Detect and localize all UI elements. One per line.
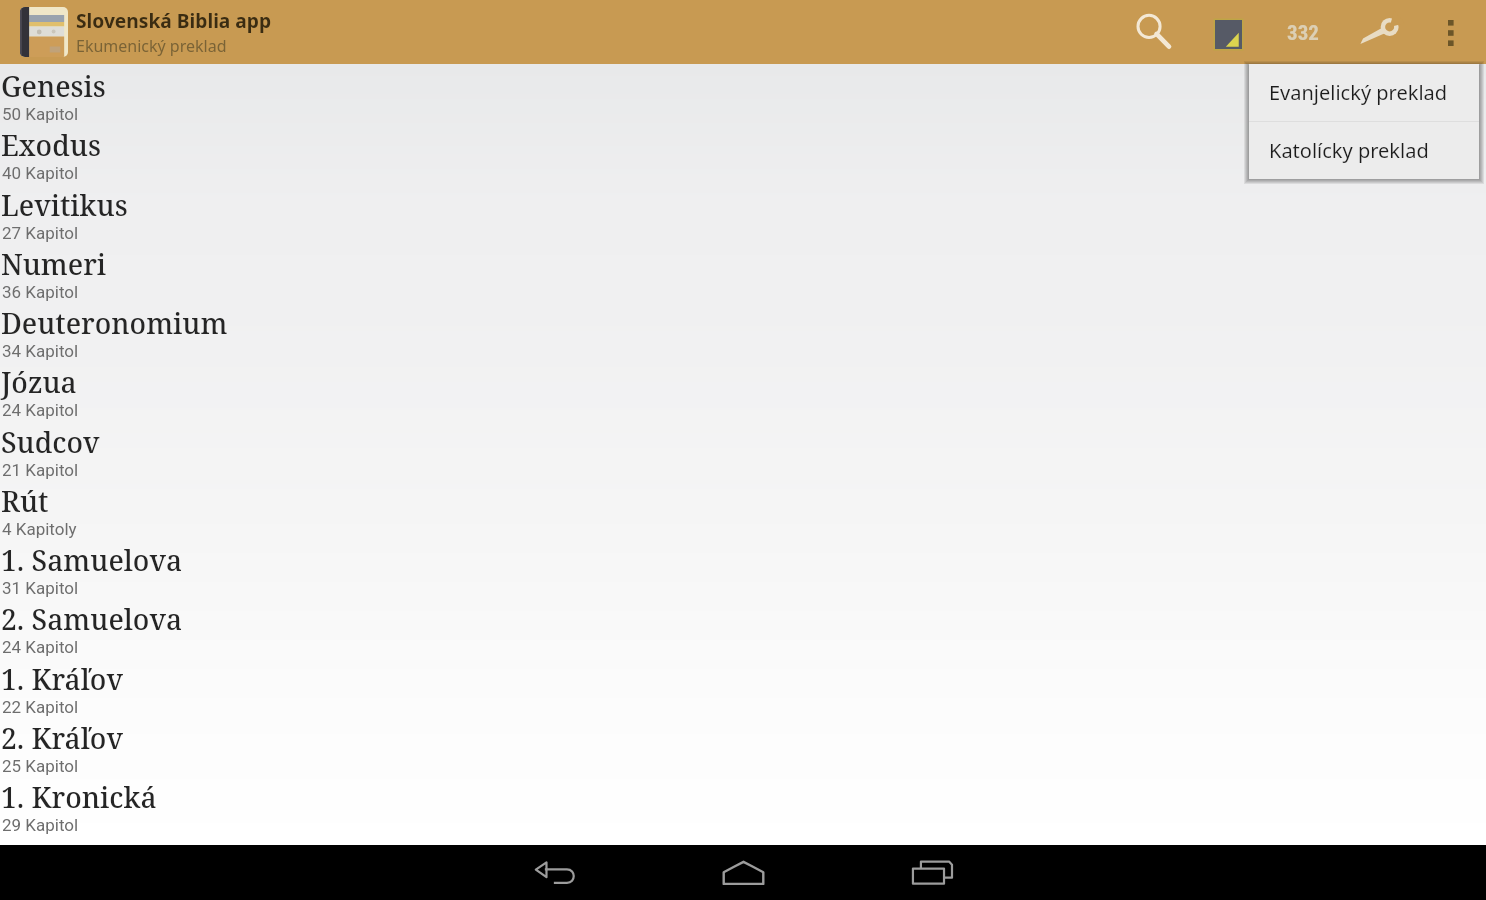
button[interactable]: Settings (1341, 0, 1416, 64)
button[interactable]: Levitikus (0, 183, 1486, 242)
button[interactable]: 1. Samuelova (0, 538, 1486, 597)
staticText: 332 (1287, 21, 1319, 46)
button[interactable]: Recents (837, 845, 1025, 900)
staticText: Sudcov (1, 423, 100, 461)
button[interactable]: Katolícky preklad (1249, 122, 1479, 179)
staticText: 24 Kapitol (2, 400, 79, 420)
staticText: Józua (1, 363, 77, 401)
button[interactable]: Numeri (0, 242, 1486, 301)
staticText: Evanjelický preklad (1269, 79, 1448, 106)
button[interactable]: Slovenská Biblia app (0, 0, 284, 64)
button[interactable]: 2. Kráľov (0, 716, 1486, 775)
staticText: 4 Kapitoly (2, 519, 77, 539)
staticText: 2. Samuelova (1, 600, 183, 638)
staticText: 36 Kapitol (2, 282, 79, 302)
button[interactable]: Genesis (0, 64, 1486, 123)
button[interactable]: Display mode (1191, 0, 1266, 64)
staticText: 1. Kráľov (1, 660, 123, 698)
staticText: Genesis (1, 67, 106, 105)
button[interactable]: Font size (1266, 0, 1341, 64)
staticText: 22 Kapitol (2, 697, 79, 717)
button[interactable]: Józua (0, 360, 1486, 419)
staticText: Numeri (1, 245, 107, 283)
button[interactable]: Back (461, 845, 649, 900)
button[interactable]: Home (649, 845, 837, 900)
button[interactable]: 1. Kráľov (0, 657, 1486, 716)
staticText: 1. Kronická (1, 778, 157, 816)
staticText: 24 Kapitol (2, 637, 79, 657)
staticText: Exodus (1, 126, 101, 164)
button[interactable]: Rút (0, 479, 1486, 538)
staticText: 29 Kapitol (2, 815, 79, 835)
staticText: 25 Kapitol (2, 756, 79, 776)
staticText: Katolícky preklad (1269, 137, 1429, 164)
staticText: Ekumenický preklad (76, 35, 227, 57)
staticText: 2. Kráľov (1, 719, 123, 757)
button[interactable]: Search (1116, 0, 1191, 64)
staticText: 40 Kapitol (2, 163, 79, 183)
button[interactable]: Sudcov (0, 420, 1486, 479)
staticText: Deuteronomium (1, 304, 228, 342)
button[interactable]: 2. Samuelova (0, 597, 1486, 656)
staticText: 1. Samuelova (1, 541, 183, 579)
staticText: 21 Kapitol (2, 460, 79, 480)
button[interactable]: Exodus (0, 123, 1486, 182)
staticText: 50 Kapitol (2, 104, 79, 124)
staticText: 27 Kapitol (2, 223, 79, 243)
staticText: Levitikus (1, 186, 128, 224)
button[interactable]: Evanjelický preklad (1249, 64, 1479, 121)
staticText: Rút (1, 482, 49, 520)
button[interactable]: 1. Kronická (0, 775, 1486, 834)
staticText: Slovenská Biblia app (76, 7, 272, 33)
button[interactable]: Deuteronomium (0, 301, 1486, 360)
button[interactable]: More options (1416, 0, 1486, 64)
staticText: 31 Kapitol (2, 578, 79, 598)
staticText: 34 Kapitol (2, 341, 79, 361)
